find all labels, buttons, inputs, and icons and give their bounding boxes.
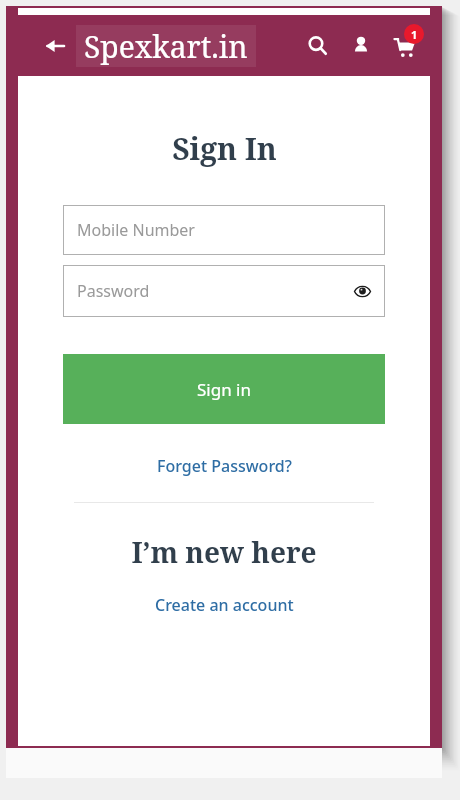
button[interactable]: Search <box>300 28 334 62</box>
button[interactable]: Sign in <box>63 354 385 424</box>
button[interactable]: Show password <box>347 276 377 306</box>
staticText: Sign in <box>197 378 251 401</box>
staticText: Mobile Number <box>77 219 195 241</box>
button[interactable]: Cart, 1 item <box>386 27 422 63</box>
button[interactable]: Mobile Number <box>63 205 385 255</box>
staticText: Forget Password? <box>157 455 292 477</box>
button[interactable]: Back <box>38 29 72 63</box>
button[interactable]: Spexkart.in <box>76 25 256 67</box>
staticText: Sign In <box>172 128 277 169</box>
button[interactable]: Forget Password? <box>149 452 300 480</box>
staticText: Spexkart.in <box>84 26 248 67</box>
staticText: 1 <box>411 27 418 42</box>
button[interactable]: Password <box>63 265 385 317</box>
button[interactable]: Account <box>344 28 378 62</box>
staticText: Create an account <box>155 594 294 616</box>
button[interactable]: Create an account <box>147 591 302 619</box>
staticText: Password <box>77 280 150 302</box>
staticText: I’m new here <box>131 533 317 571</box>
